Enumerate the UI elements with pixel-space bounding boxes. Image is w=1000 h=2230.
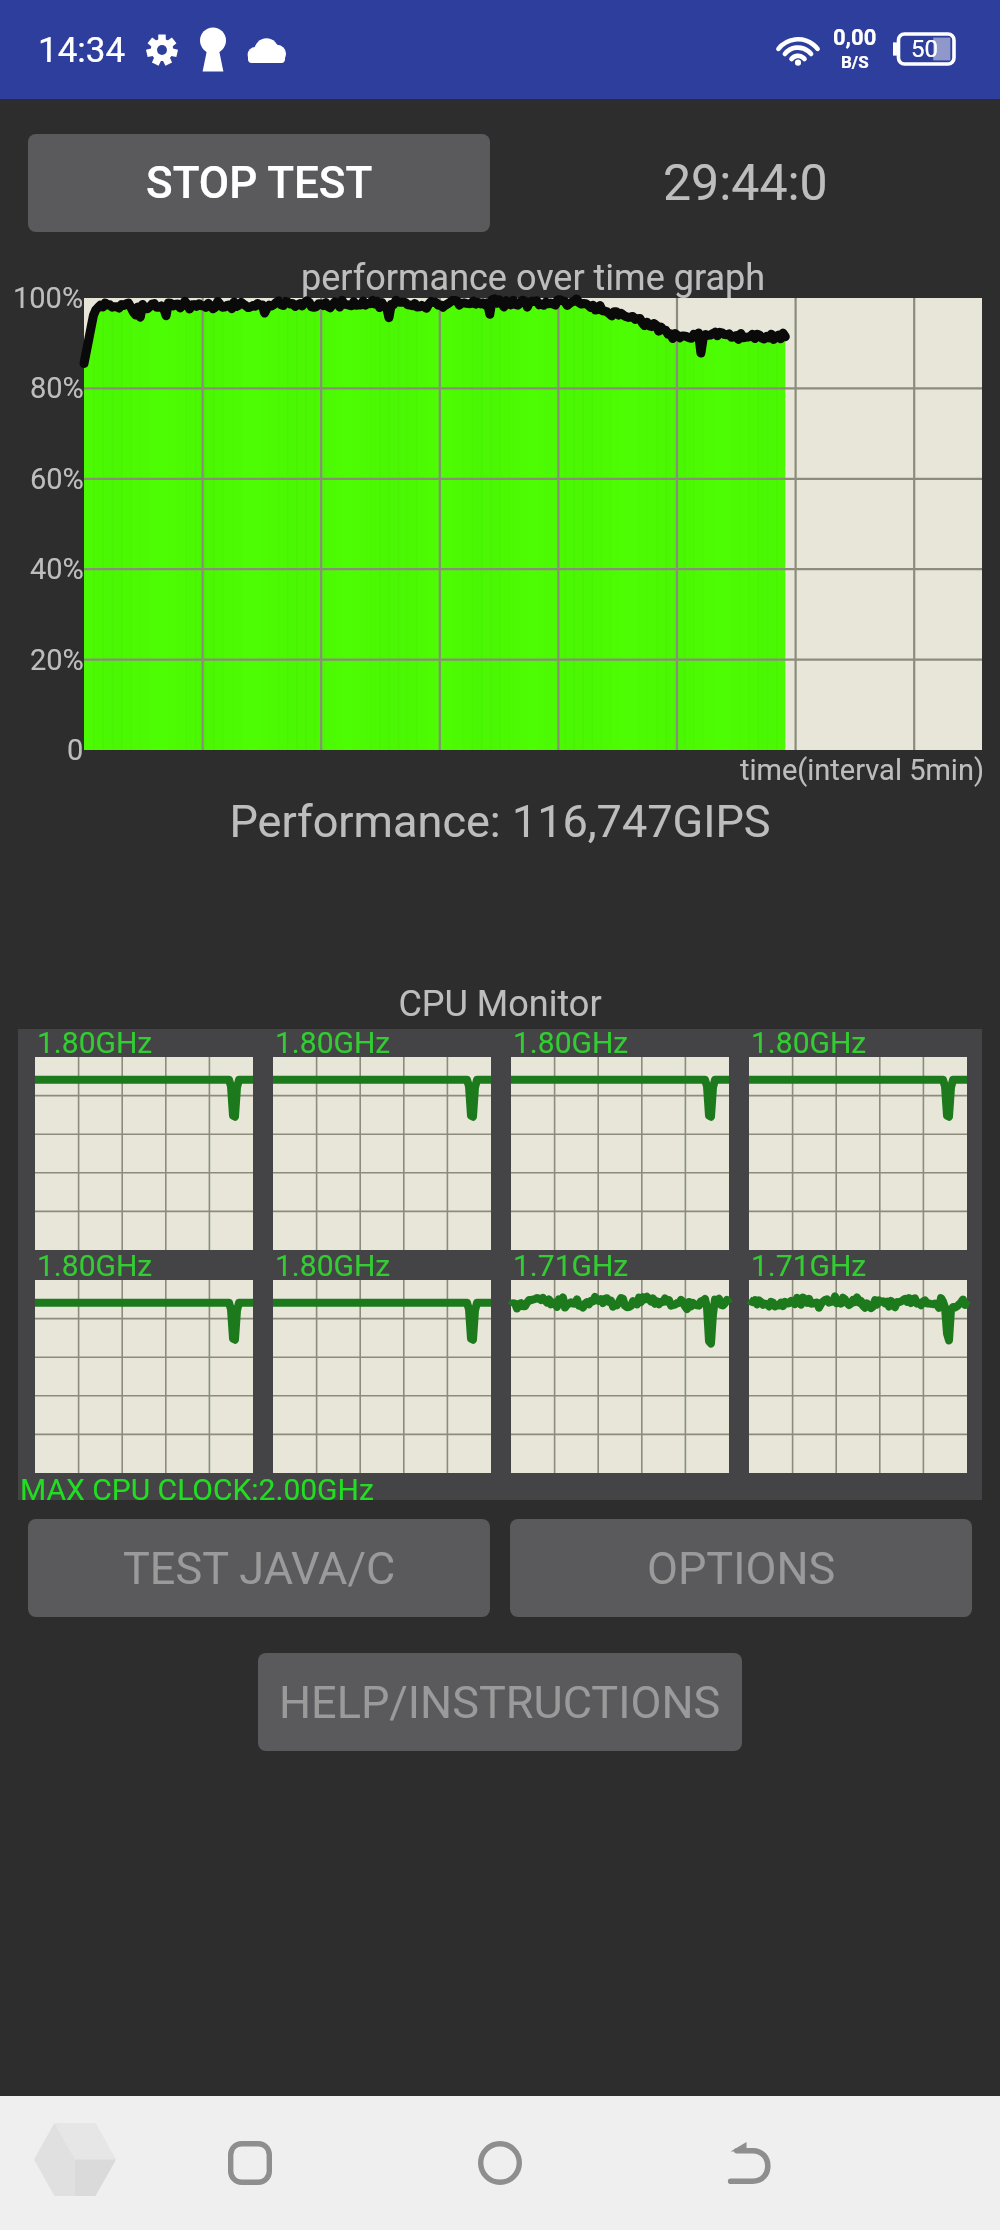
staticText: 50 — [911, 35, 938, 63]
staticText: Performance: 116,747GIPS — [0, 795, 1000, 848]
staticText: TEST JAVA/C — [123, 1542, 396, 1595]
staticText: 40% — [30, 552, 84, 586]
staticText: 20% — [30, 643, 84, 677]
staticText: B/S — [841, 52, 869, 72]
staticText: 1.80GHz — [275, 1248, 391, 1283]
staticText: 0,00 — [833, 25, 877, 51]
staticText: MAX CPU CLOCK:2.00GHz — [20, 1472, 374, 1507]
staticText: time(interval 5min) — [740, 753, 985, 787]
staticText: performance over time graph — [84, 257, 982, 299]
staticText: 14:34 — [38, 30, 126, 71]
button[interactable]: HELP/INSTRUCTIONS — [258, 1653, 742, 1751]
staticText: 1.80GHz — [751, 1025, 867, 1060]
staticText: 1.80GHz — [275, 1025, 391, 1060]
staticText: 100% — [13, 281, 84, 315]
staticText: 1.71GHz — [751, 1248, 867, 1283]
staticText: CPU Monitor — [0, 983, 1000, 1025]
staticText: 80% — [30, 371, 84, 405]
button[interactable]: TEST JAVA/C — [28, 1519, 490, 1617]
button[interactable]: Home screen — [445, 2108, 555, 2218]
staticText: 0 — [67, 733, 84, 767]
button[interactable]: Back — [695, 2108, 805, 2218]
staticText: 1.71GHz — [513, 1248, 629, 1283]
staticText: 1.80GHz — [513, 1025, 629, 1060]
staticText: OPTIONS — [647, 1542, 836, 1595]
button[interactable]: Home — [195, 2108, 305, 2218]
staticText: 29:44:0 — [663, 154, 828, 213]
staticText: 60% — [30, 462, 84, 496]
staticText: 1.80GHz — [37, 1025, 153, 1060]
button[interactable]: OPTIONS — [510, 1519, 972, 1617]
staticText: HELP/INSTRUCTIONS — [279, 1676, 721, 1729]
staticText: 1.80GHz — [37, 1248, 153, 1283]
staticText: STOP TEST — [146, 157, 373, 209]
button[interactable]: Recents — [17, 2101, 133, 2217]
button[interactable]: STOP TEST — [28, 134, 490, 232]
